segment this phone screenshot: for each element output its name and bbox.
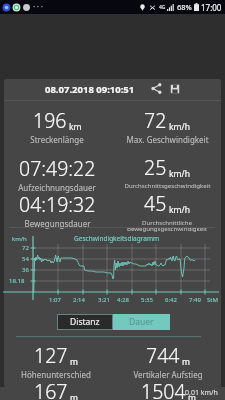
staticText: 08.07.2018 09:10:51 [45,83,135,96]
button[interactable]: 25 [111,154,223,189]
staticText: 68% [177,2,192,12]
staticText: 72 [144,107,167,134]
staticText: 04:19:32 [19,191,96,218]
staticText: km [69,121,82,133]
staticText: 2:14 [73,296,85,304]
staticText: km/h [12,235,27,243]
staticText: Durchschnittliche Bewegungsgeschwindigke… [127,218,207,233]
button[interactable]: Dauer [113,314,170,330]
staticText: Dauer [129,316,154,328]
staticText: Höhenunterschied [21,369,91,380]
staticText: 17:00 [201,2,222,13]
button[interactable]: 45 [111,190,223,233]
button[interactable]: 08.07.2018 09:10:51 [0,79,180,100]
staticText: Distanz [70,316,100,328]
staticText: 4:28 [117,296,129,304]
staticText: Vertikaler Aufstieg [133,369,203,380]
staticText: 3:21 [98,296,110,304]
staticText: 0,01 km/h [185,388,218,398]
staticText: km/h [169,121,190,133]
button[interactable]: 04:19:32 [1,191,113,229]
button[interactable]: Speichern [167,81,182,96]
staticText: Durchschnittsgeschwindigkeit [124,181,211,189]
staticText: 45 [144,190,167,217]
staticText: Streckenlänge [30,134,84,145]
staticText: m [70,392,78,400]
staticText: 18.18 [9,277,25,285]
staticText: Bewegungsdauer [24,218,91,229]
staticText: 25 [144,154,167,181]
button[interactable]: 196 [1,107,113,145]
staticText: • • • [33,3,43,11]
button[interactable]: Teilen [149,81,164,96]
staticText: Aufzeichnungsdauer [18,182,96,193]
staticText: 1:07 [49,296,61,304]
staticText: 1504 [141,378,186,400]
staticText: 7:49 [189,296,201,304]
button[interactable]: 127 [0,342,112,380]
staticText: 36 [22,266,29,274]
staticText: 54 [22,255,29,263]
staticText: 167 [34,378,68,400]
staticText: km/h [169,204,190,216]
staticText: 744 [146,342,180,369]
staticText: 07:49:22 [19,155,96,182]
staticText: 72 [22,244,29,252]
staticText: 4G [159,4,166,11]
button[interactable]: 72 [111,107,223,145]
staticText: 5:35 [141,296,153,304]
staticText: m [182,356,190,368]
staticText: 6:42 [165,296,177,304]
staticText: StM [207,296,218,304]
button[interactable]: Distanz [57,314,113,330]
staticText: km/h [169,168,190,180]
button[interactable]: 1504 [112,378,224,400]
staticText: 127 [34,342,68,369]
button[interactable]: 167 [0,378,112,400]
button[interactable]: 07:49:22 [1,155,113,193]
staticText: m [188,392,196,400]
staticText: m [70,356,78,368]
button[interactable]: 744 [112,342,224,380]
staticText: Geschwindigkeitsdiagramm [74,234,160,243]
staticText: Max. Geschwindigkeit [126,134,209,145]
staticText: 196 [33,107,67,134]
